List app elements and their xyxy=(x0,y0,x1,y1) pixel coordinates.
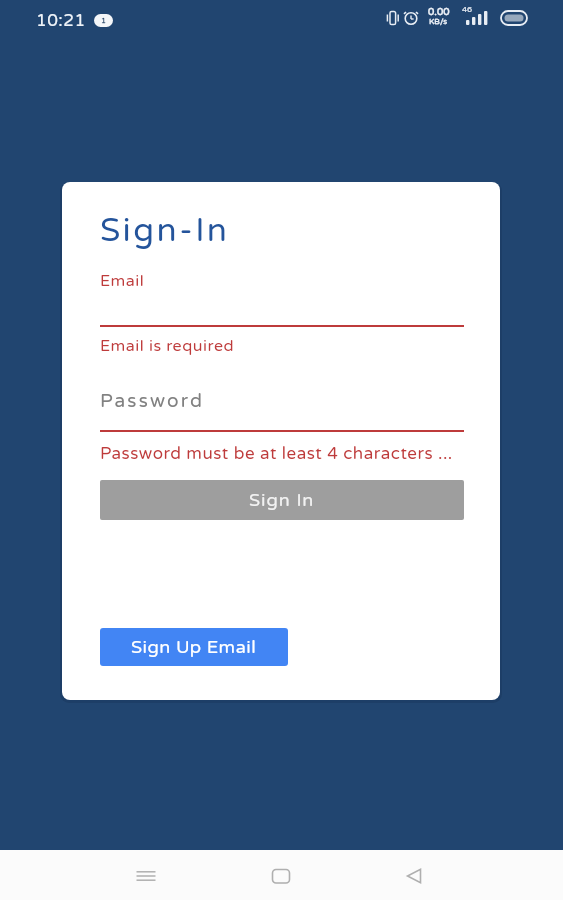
staticText: KB/s xyxy=(429,17,448,27)
button[interactable] xyxy=(257,852,305,900)
button[interactable]: Sign Up Email xyxy=(100,628,288,666)
staticText: Sign Up Email xyxy=(131,636,257,658)
button[interactable] xyxy=(122,852,170,900)
button[interactable] xyxy=(100,290,464,327)
staticText: 10:21 xyxy=(36,10,86,30)
staticText: Email xyxy=(100,271,145,290)
button[interactable]: Sign In xyxy=(100,480,464,520)
staticText: Password must be at least 4 characters .… xyxy=(100,443,453,463)
button[interactable] xyxy=(100,395,464,432)
staticText: Sign-In xyxy=(100,211,230,251)
staticText: Email is required xyxy=(100,336,235,355)
staticText: 1 xyxy=(101,16,107,26)
staticText: 0.00 xyxy=(428,6,450,18)
button[interactable] xyxy=(390,852,438,900)
staticText: Password xyxy=(100,390,205,413)
staticText: 46 xyxy=(462,5,473,15)
staticText: Sign In xyxy=(249,489,315,511)
